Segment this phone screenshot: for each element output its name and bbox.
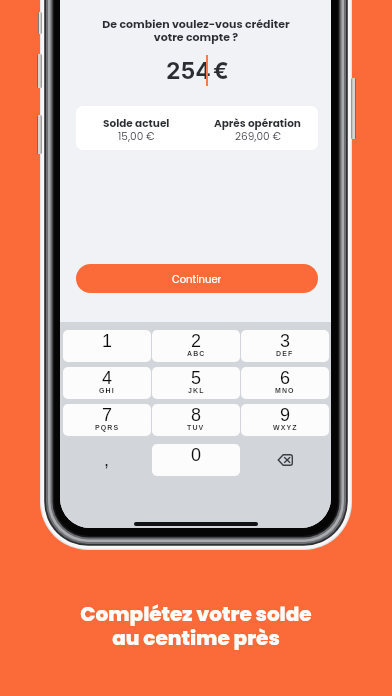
staticText: 269,00 € xyxy=(235,129,281,144)
staticText: , xyxy=(104,450,110,470)
staticText: GHI xyxy=(99,387,115,395)
staticText: PQRS xyxy=(95,424,120,432)
staticText: Complétez votre solde au centime près xyxy=(80,600,312,652)
staticText: MNO xyxy=(275,387,295,395)
button[interactable]: 9 xyxy=(241,404,329,436)
staticText: TUV xyxy=(187,424,205,432)
button[interactable]: 2 xyxy=(152,330,240,362)
staticText: WXYZ xyxy=(273,424,298,432)
staticText: DEF xyxy=(276,350,294,358)
staticText: Continuer xyxy=(172,272,222,286)
staticText: ABC xyxy=(187,350,206,358)
button[interactable]: , xyxy=(63,444,151,476)
button[interactable]: 8 xyxy=(152,404,240,436)
button[interactable]: 4 xyxy=(63,367,151,399)
button[interactable]: Backspace xyxy=(241,444,329,476)
button[interactable]: Continuer xyxy=(76,264,318,293)
staticText: 1 xyxy=(102,331,113,351)
staticText: 5 xyxy=(191,368,202,388)
button[interactable]: 0 xyxy=(152,444,240,476)
staticText: 6 xyxy=(280,368,291,388)
staticText: 7 xyxy=(102,405,113,425)
button[interactable]: 7 xyxy=(63,404,151,436)
staticText: 2 xyxy=(191,331,202,351)
staticText: 0 xyxy=(191,445,202,465)
staticText: 9 xyxy=(280,405,291,425)
staticText: 4 xyxy=(102,368,113,388)
button[interactable]: 5 xyxy=(152,367,240,399)
button[interactable]: 1 xyxy=(63,330,151,362)
staticText: 3 xyxy=(280,331,291,351)
button[interactable]: 6 xyxy=(241,367,329,399)
staticText: 8 xyxy=(191,405,202,425)
staticText: Solde actuel xyxy=(103,116,170,131)
staticText: € xyxy=(213,57,229,85)
staticText: 254 xyxy=(166,57,211,85)
staticText: Après opération xyxy=(214,116,301,131)
staticText: De combien voulez-vous créditer votre co… xyxy=(102,16,290,45)
staticText: 15,00 € xyxy=(118,129,155,144)
button[interactable]: 3 xyxy=(241,330,329,362)
staticText: JKL xyxy=(188,387,205,395)
